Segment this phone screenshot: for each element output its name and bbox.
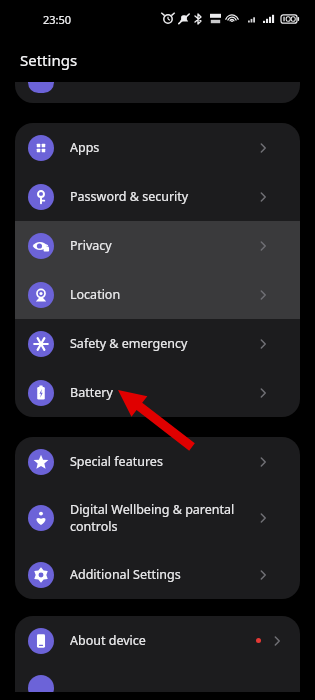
- button[interactable]: Apps: [15, 123, 300, 172]
- button[interactable]: Digital Wellbeing & parental controls: [15, 486, 300, 550]
- staticText: Battery: [70, 384, 252, 401]
- staticText: Privacy: [70, 237, 252, 254]
- staticText: Password & security: [70, 188, 252, 205]
- staticText: 23:50: [43, 12, 72, 27]
- button[interactable]: Battery: [15, 368, 300, 417]
- button[interactable]: [15, 82, 300, 103]
- button[interactable]: About device: [15, 616, 300, 665]
- button[interactable]: Safety & emergency: [15, 319, 300, 368]
- button[interactable]: Special features: [15, 437, 300, 486]
- button[interactable]: Password & security: [15, 172, 300, 221]
- button[interactable]: Privacy: [15, 221, 300, 270]
- staticText: About device: [70, 632, 252, 649]
- staticText: Settings: [20, 50, 78, 70]
- staticText: Special features: [70, 453, 252, 470]
- staticText: Digital Wellbeing & parental controls: [70, 501, 252, 535]
- staticText: Additional Settings: [70, 566, 252, 583]
- staticText: Location: [70, 286, 252, 303]
- staticText: Apps: [70, 139, 252, 156]
- staticText: Safety & emergency: [70, 335, 252, 352]
- button[interactable]: [15, 665, 300, 692]
- button[interactable]: Additional Settings: [15, 550, 300, 599]
- button[interactable]: Location: [15, 270, 300, 319]
